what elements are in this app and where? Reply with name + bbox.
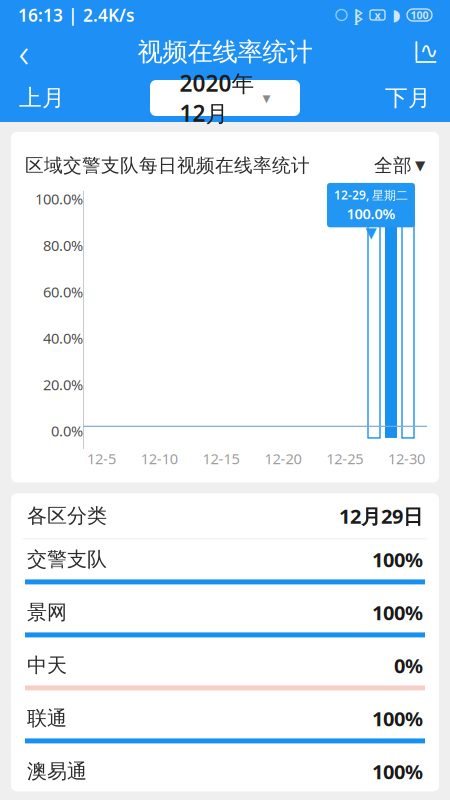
button[interactable]: 下月	[371, 78, 445, 118]
button[interactable]: 景网	[11, 592, 439, 645]
staticText: ᛒ	[354, 4, 363, 26]
staticText: 各区分类	[27, 504, 107, 528]
staticText: 0.0%	[51, 421, 83, 441]
staticText: 联通	[27, 706, 67, 731]
staticText: 100%	[372, 599, 423, 626]
staticText: 100.0%	[35, 189, 83, 209]
staticText: 12-30	[388, 449, 425, 468]
staticText: 12-25	[326, 449, 363, 468]
staticText: 12-20	[264, 449, 301, 468]
button[interactable]: 交警支队	[11, 539, 439, 592]
button[interactable]: 2020年12月	[150, 80, 300, 116]
staticText: 40.0%	[43, 328, 83, 348]
staticText: ▼	[415, 158, 425, 173]
staticText: 12-29, 星期二	[334, 187, 408, 203]
staticText: ‹	[18, 25, 29, 78]
staticText: 2020年12月	[179, 68, 254, 128]
staticText: 视频在线率统计	[137, 36, 312, 67]
staticText: 区域交警支队每日视频在线率统计	[25, 154, 310, 177]
staticText: 100%	[372, 758, 423, 785]
staticText: 下月	[385, 84, 431, 112]
button[interactable]: 全部	[374, 150, 425, 181]
staticText: 中天	[27, 653, 67, 678]
staticText: ▾	[262, 89, 270, 107]
staticText: 100	[410, 8, 428, 22]
staticText: 16:13 | 2.4K/s	[18, 3, 135, 26]
staticText: 全部	[374, 154, 412, 177]
button[interactable]: 中天	[11, 645, 439, 698]
staticText: 0%	[394, 652, 423, 679]
staticText: x	[374, 8, 380, 22]
staticText: 12月29日	[339, 503, 423, 529]
staticText: 12-5	[87, 449, 116, 468]
button[interactable]: Chart view	[402, 30, 450, 74]
staticText: 80.0%	[43, 236, 83, 255]
staticText: 12-15	[203, 449, 240, 468]
staticText: 100%	[372, 546, 423, 573]
staticText: 100%	[372, 705, 423, 732]
staticText: 100.0%	[346, 204, 395, 223]
staticText: ∿	[419, 38, 438, 63]
button[interactable]: 联通	[11, 698, 439, 751]
staticText: ▼	[365, 224, 376, 241]
staticText: 澳易通	[27, 759, 87, 784]
staticText: 交警支队	[27, 547, 107, 572]
button[interactable]: Back	[0, 30, 48, 74]
staticText: 景网	[27, 600, 67, 625]
staticText: ◗	[392, 6, 400, 24]
button[interactable]: 上月	[5, 78, 79, 118]
staticText: 60.0%	[43, 282, 83, 301]
staticText: 12-10	[141, 449, 178, 468]
staticText: 20.0%	[43, 375, 83, 394]
staticText: 上月	[19, 84, 65, 112]
